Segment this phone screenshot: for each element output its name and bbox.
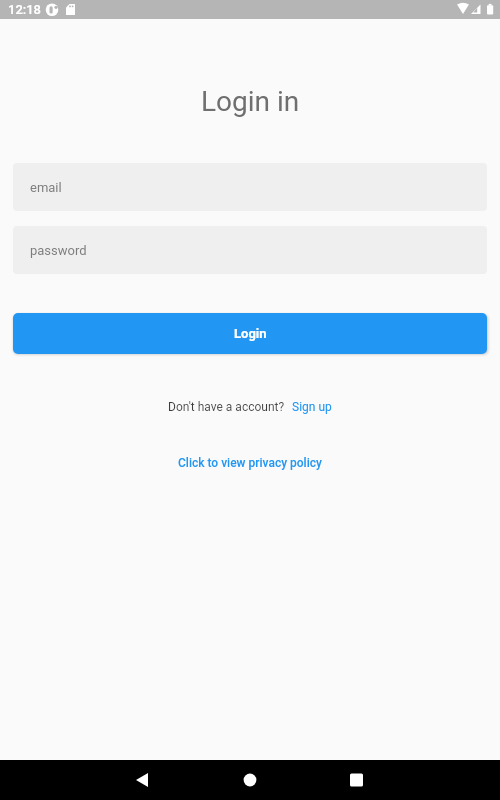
button[interactable]: password bbox=[13, 226, 487, 274]
button[interactable] bbox=[336, 760, 376, 800]
staticText: Click to view privacy policy bbox=[178, 456, 322, 470]
staticText: Login bbox=[234, 326, 267, 341]
staticText: password bbox=[30, 243, 87, 258]
staticText: Sign up bbox=[292, 400, 332, 414]
staticText: 12:18 bbox=[8, 2, 42, 17]
staticText: Login in bbox=[201, 85, 300, 118]
button[interactable]: Sign up bbox=[292, 400, 332, 414]
button[interactable]: Click to view privacy policy bbox=[178, 456, 322, 470]
button[interactable]: email bbox=[13, 163, 487, 211]
staticText: Don't have a account? bbox=[168, 400, 285, 414]
staticText: email bbox=[30, 180, 62, 195]
button[interactable] bbox=[230, 760, 270, 800]
button[interactable] bbox=[125, 760, 165, 800]
button[interactable]: Login bbox=[13, 313, 487, 354]
